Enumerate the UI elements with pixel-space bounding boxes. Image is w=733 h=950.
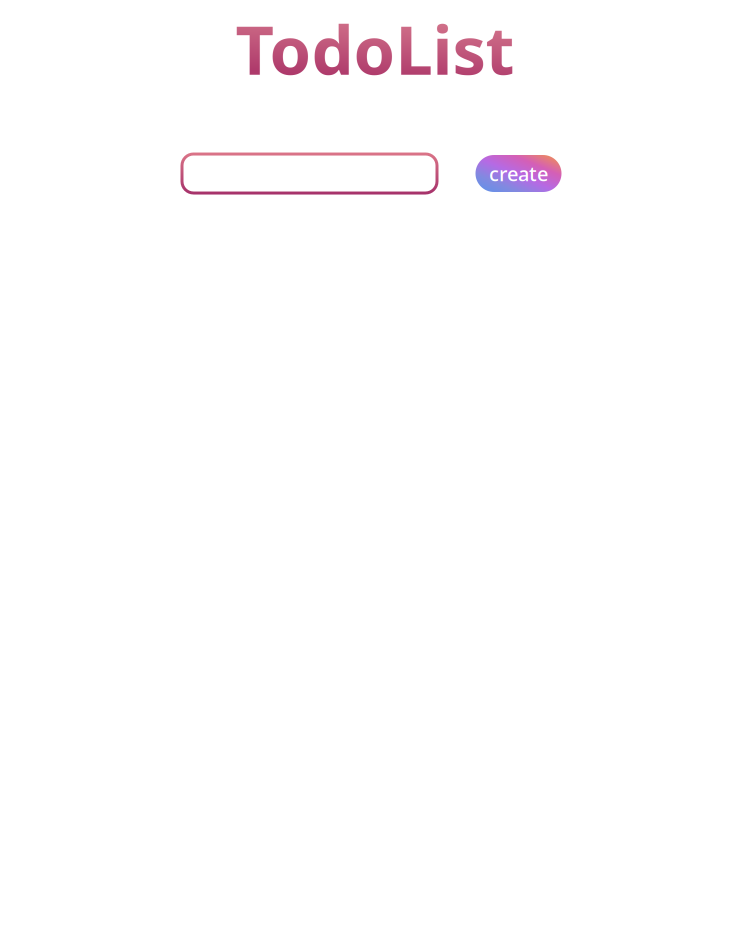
- staticText: create: [489, 160, 548, 187]
- button[interactable]: New todo: [180, 152, 438, 194]
- button[interactable]: create: [475, 155, 561, 192]
